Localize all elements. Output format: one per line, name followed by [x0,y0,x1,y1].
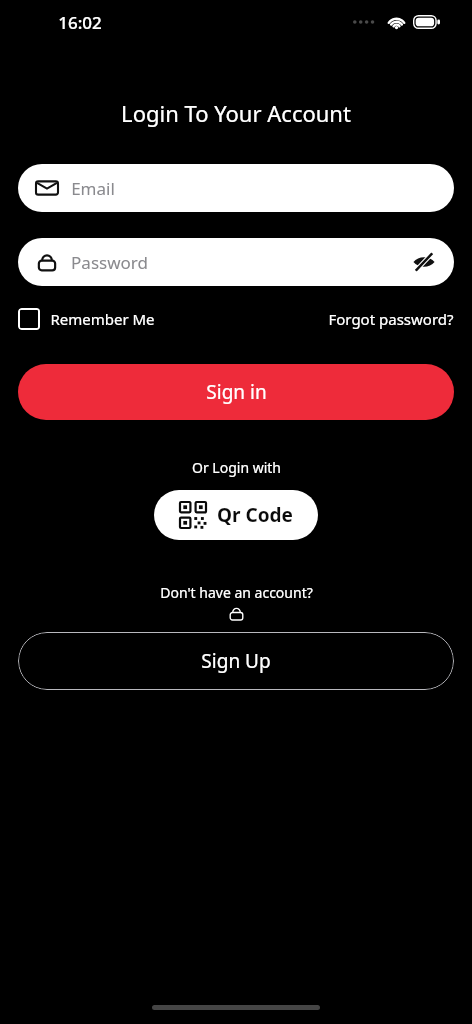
staticText: Sign in [206,379,267,405]
button[interactable]: Sign in [18,364,454,420]
button[interactable]: Email [18,164,454,212]
button[interactable]: Sign Up [18,632,454,690]
button[interactable]: Forgot password? [328,309,454,329]
staticText: Don't have an account? [160,583,313,602]
button[interactable]: Qr Code [154,490,318,540]
staticText: Sign Up [201,648,271,674]
staticText: Remember Me [50,309,155,329]
staticText: Login To Your Account [121,98,351,128]
button[interactable]: Password [18,238,454,286]
staticText: Qr Code [217,502,293,528]
staticText: Forgot password? [328,309,454,329]
staticText: Email [71,177,115,200]
staticText: Or Login with [192,458,281,477]
button[interactable]: Toggle password visibility [412,250,436,274]
button[interactable]: Remember Me [18,308,155,330]
staticText: Password [71,251,148,274]
staticText: 16:02 [58,11,102,34]
